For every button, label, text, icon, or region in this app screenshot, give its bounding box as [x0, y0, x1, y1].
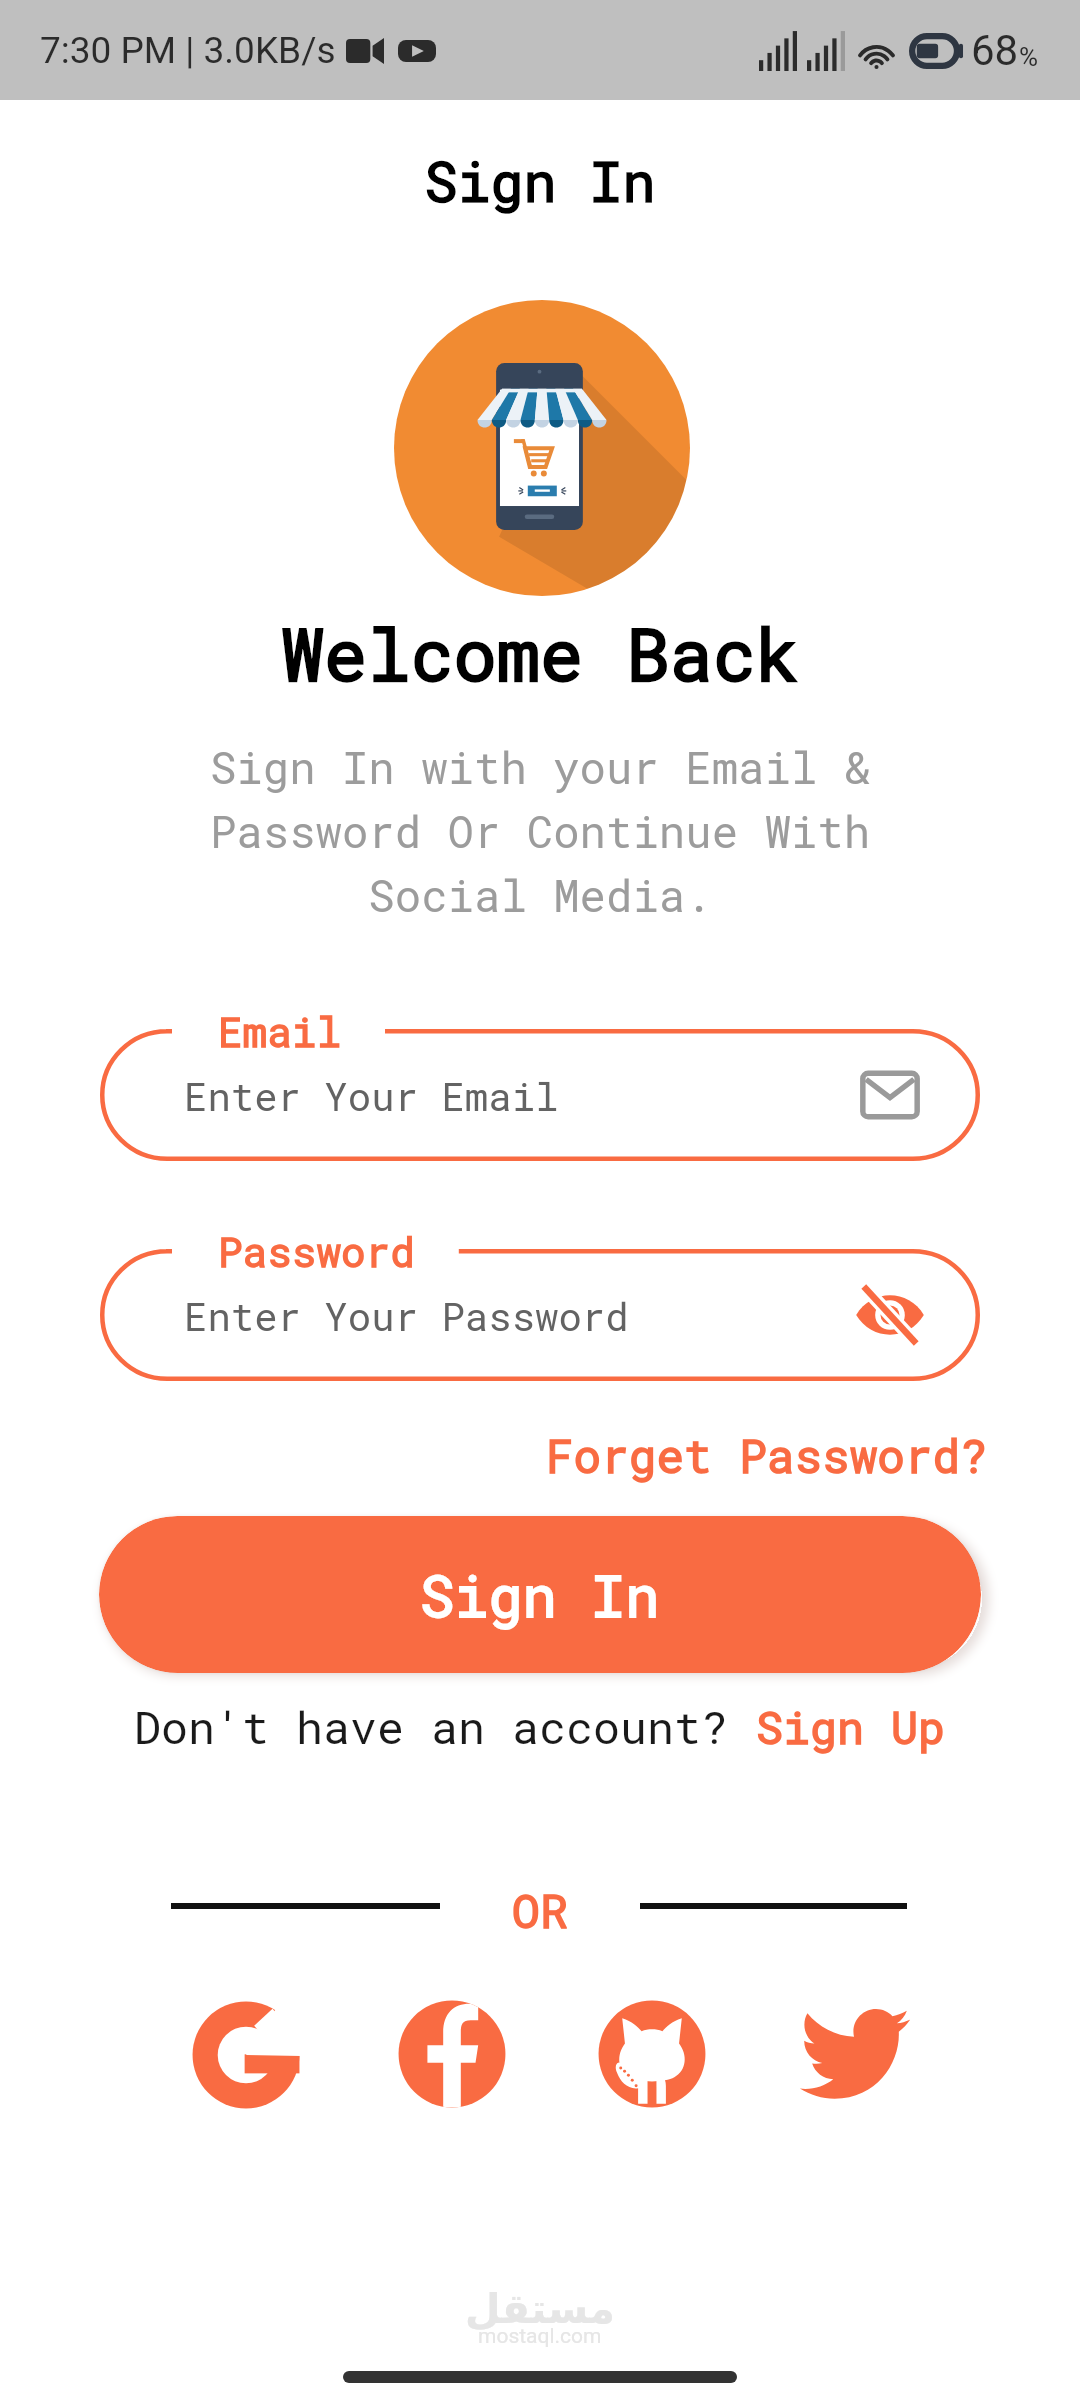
staticText: Email — [218, 1004, 342, 1058]
staticText: Password — [218, 1224, 415, 1278]
staticText: Sign In — [420, 1557, 660, 1632]
button[interactable]: Sign Up — [756, 1697, 946, 1756]
button[interactable]: Toggle password visibility — [852, 1277, 928, 1353]
staticText: 68 — [971, 26, 1019, 75]
staticText: mostaql.com — [478, 2324, 602, 2349]
staticText: OR — [0, 1879, 1080, 1941]
staticText: Forget Password? — [546, 1425, 988, 1486]
staticText: Sign Up — [756, 1697, 946, 1756]
staticText: Enter Your Password — [184, 1290, 629, 1341]
button[interactable]: Email — [852, 1057, 928, 1133]
staticText: Welcome Back — [0, 606, 1080, 701]
button[interactable]: Forget Password? — [546, 1425, 988, 1486]
button[interactable]: Password — [100, 1249, 980, 1381]
button[interactable]: Sign in with Google — [178, 1987, 314, 2123]
button[interactable]: Email — [100, 1029, 980, 1161]
staticText: % — [1019, 42, 1039, 72]
button[interactable]: Sign in with Facebook — [384, 1986, 520, 2122]
button[interactable]: Sign in with Twitter — [787, 1986, 923, 2122]
staticText: Sign In with your Email & Password Or Co… — [180, 738, 900, 924]
button[interactable]: Sign In — [99, 1516, 981, 1673]
staticText: Don't have an account? — [134, 1697, 756, 1756]
staticText: 7:30 PM | 3.0KB/s — [40, 29, 336, 72]
staticText: Enter Your Email — [184, 1070, 559, 1121]
button[interactable]: Sign in with GitHub — [584, 1986, 720, 2122]
staticText: Sign In — [0, 144, 1080, 217]
staticText: مستقل — [465, 2285, 615, 2333]
